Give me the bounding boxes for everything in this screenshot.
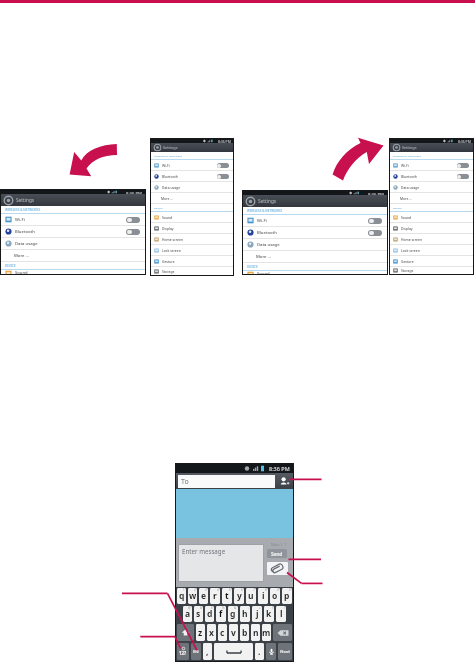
staticText: Sound xyxy=(162,215,173,220)
staticText: - xyxy=(248,606,249,610)
button[interactable]: Data usage xyxy=(154,182,233,192)
button[interactable]: Send xyxy=(267,549,287,558)
staticText: Bluetooth xyxy=(257,230,277,236)
button[interactable]: Bluetooth xyxy=(5,226,145,237)
staticText: Wi-Fi xyxy=(15,217,25,223)
button[interactable]: Space xyxy=(214,643,253,660)
button[interactable]: n xyxy=(251,624,260,641)
staticText: l xyxy=(280,608,283,620)
button[interactable]: # xyxy=(194,606,203,622)
button[interactable]: c xyxy=(218,624,227,641)
button[interactable]: ) xyxy=(276,606,286,622)
button[interactable]: More ... xyxy=(14,250,145,261)
button[interactable]: & xyxy=(228,606,238,622)
button[interactable]: ( xyxy=(264,606,274,622)
button[interactable]: Display xyxy=(154,223,233,233)
staticText: Lock screen xyxy=(162,248,181,253)
button[interactable]: 0 xyxy=(282,588,292,604)
staticText: c xyxy=(220,627,225,639)
button[interactable]: 8 xyxy=(258,588,268,604)
button[interactable]: . xyxy=(255,643,264,660)
button[interactable]: Sound xyxy=(5,270,145,274)
staticText: y xyxy=(237,590,242,602)
button[interactable]: Enter message xyxy=(179,545,263,581)
button[interactable]: - xyxy=(240,606,250,622)
staticText: Sound xyxy=(257,271,270,274)
button[interactable]: EN xyxy=(191,643,201,660)
staticText: DEVICE xyxy=(154,206,163,209)
button[interactable]: Bluetooth xyxy=(393,171,473,181)
button[interactable]: Home screen xyxy=(393,234,473,244)
button[interactable]: 3 xyxy=(199,588,208,604)
button[interactable]: More ... xyxy=(256,251,387,262)
staticText: Home screen xyxy=(162,237,184,242)
staticText: Enter message xyxy=(182,547,226,555)
button[interactable]: Data usage xyxy=(247,239,387,250)
staticText: + xyxy=(259,606,261,610)
button[interactable]: Data usage xyxy=(393,182,473,192)
staticText: z xyxy=(198,627,203,639)
button[interactable]: Wi-Fi xyxy=(154,160,233,170)
staticText: DEVICE xyxy=(393,206,402,209)
button[interactable]: Voice xyxy=(266,643,276,660)
staticText: Storage xyxy=(162,269,175,274)
button[interactable]: 6 xyxy=(234,588,244,604)
staticText: Data usage xyxy=(15,241,38,247)
staticText: Bluetooth xyxy=(162,174,178,179)
button[interactable]: Bluetooth xyxy=(154,171,233,181)
button[interactable]: Add contact xyxy=(275,473,293,489)
button[interactable]: Delete xyxy=(273,624,292,641)
button[interactable]: 4 xyxy=(210,588,220,604)
button[interactable]: Shift xyxy=(177,624,194,641)
button[interactable]: v xyxy=(229,624,238,641)
staticText: ) xyxy=(284,606,285,610)
button[interactable]: 9 xyxy=(270,588,280,604)
staticText: 5 xyxy=(229,588,231,592)
button[interactable]: @ xyxy=(183,606,192,622)
staticText: Home screen xyxy=(401,237,423,242)
button[interactable]: Display xyxy=(393,223,473,233)
button[interactable]: $ xyxy=(205,606,214,622)
button[interactable]: m xyxy=(262,624,271,641)
staticText: 3 xyxy=(205,588,207,592)
staticText: @ xyxy=(188,606,191,610)
button[interactable]: 7 xyxy=(246,588,256,604)
button[interactable]: Bluetooth xyxy=(247,227,387,238)
button[interactable]: More ... xyxy=(400,193,473,203)
button[interactable]: Wi-Fi xyxy=(393,160,473,170)
staticText: 8 xyxy=(265,588,267,592)
button[interactable]: + xyxy=(252,606,262,622)
staticText: 8:36 PM xyxy=(218,139,231,143)
button[interactable]: Lock screen xyxy=(154,245,233,255)
button[interactable]: Data usage xyxy=(5,238,145,249)
button[interactable]: Wi-Fi xyxy=(247,215,387,226)
button[interactable]: Next xyxy=(278,643,292,660)
staticText: k xyxy=(266,608,272,620)
button[interactable]: 5 xyxy=(222,588,232,604)
button[interactable]: % xyxy=(216,606,226,622)
button[interactable]: Storage xyxy=(154,267,233,275)
button[interactable]: More ... xyxy=(161,193,233,203)
button[interactable]: Wi-Fi xyxy=(5,214,145,225)
staticText: More ... xyxy=(14,253,29,259)
button[interactable]: x xyxy=(207,624,216,641)
button[interactable]: Storage xyxy=(393,267,473,274)
button[interactable]: Gesture xyxy=(393,256,473,266)
button[interactable]: z xyxy=(196,624,205,641)
button[interactable]: b xyxy=(240,624,249,641)
button[interactable]: Attach xyxy=(267,562,288,575)
button[interactable]: Sound xyxy=(393,212,473,222)
button[interactable]: Sound xyxy=(154,212,233,222)
button[interactable]: Sound xyxy=(247,271,387,274)
button[interactable]: 1 xyxy=(177,588,186,604)
button[interactable]: 2 xyxy=(188,588,197,604)
button[interactable]: Lock screen xyxy=(393,245,473,255)
button[interactable]: Gesture xyxy=(154,256,233,266)
staticText: 8:36 PM xyxy=(126,190,142,194)
button[interactable]: , xyxy=(203,643,212,660)
staticText: s xyxy=(196,608,201,620)
staticText: ( xyxy=(272,606,273,610)
button[interactable]: 12? xyxy=(177,643,189,660)
button[interactable]: Home screen xyxy=(154,234,233,244)
staticText: To xyxy=(181,477,189,487)
